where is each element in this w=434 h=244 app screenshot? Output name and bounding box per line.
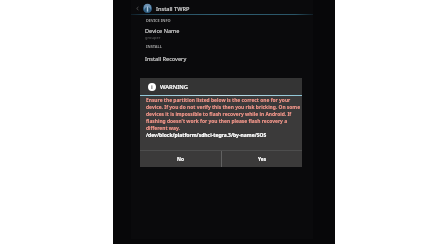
staticText: Yes	[258, 156, 267, 163]
button[interactable]: Yes	[222, 151, 302, 167]
staticText: No	[177, 156, 184, 163]
staticText: i	[151, 83, 153, 91]
staticText: grouper	[145, 35, 161, 40]
staticText: Install Recovery	[145, 55, 187, 63]
button[interactable]: Device Name	[131, 25, 313, 41]
button[interactable]: Back	[134, 5, 141, 12]
button[interactable]: No	[140, 151, 221, 167]
staticText: Install TWRP	[156, 5, 190, 13]
staticText: INSTALL	[146, 44, 162, 49]
button[interactable]: Install Recovery	[131, 53, 313, 64]
staticText: WARNING	[160, 83, 188, 91]
staticText: Device Name	[145, 27, 180, 35]
staticText: Ensure the partition listed below is the…	[146, 97, 301, 132]
staticText: /dev/block/platform/sdhci-tegra.3/by-nam…	[146, 132, 267, 139]
staticText: DEVICE INFO	[146, 18, 171, 23]
